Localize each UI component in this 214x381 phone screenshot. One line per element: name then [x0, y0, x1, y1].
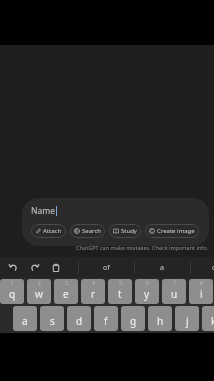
staticText: Search — [82, 227, 101, 235]
button[interactable]: a — [134, 257, 190, 278]
staticText: a — [160, 263, 164, 273]
button[interactable]: a — [13, 306, 37, 331]
button[interactable]: 5 — [108, 279, 132, 304]
staticText: u — [171, 287, 178, 301]
button[interactable]: 1 — [0, 279, 24, 304]
staticText: 4 — [92, 280, 95, 287]
staticText: s — [50, 314, 55, 328]
staticText: t — [118, 287, 122, 301]
button[interactable]: d — [67, 306, 91, 331]
button[interactable]: Name — [22, 198, 209, 246]
staticText: i — [200, 287, 203, 301]
button[interactable]: 7 — [162, 279, 186, 304]
staticText: w — [35, 287, 43, 301]
staticText: 2 — [38, 280, 41, 287]
button[interactable]: h — [148, 306, 172, 331]
button[interactable]: j — [175, 306, 199, 331]
button[interactable]: 6 — [135, 279, 159, 304]
button[interactable]: Create image — [145, 224, 199, 238]
staticText: Attach — [43, 227, 62, 235]
staticText: y — [144, 287, 150, 301]
staticText: 6 — [146, 280, 149, 287]
staticText: ChatGPT can make mistakes. Check importa… — [76, 244, 208, 251]
staticText: Create image — [157, 227, 195, 235]
staticText: 8 — [200, 280, 203, 287]
staticText: k — [211, 314, 214, 328]
staticText: r — [91, 287, 96, 301]
button[interactable]: 4 — [81, 279, 105, 304]
button[interactable]: g — [121, 306, 145, 331]
staticText: 3 — [65, 280, 68, 287]
button[interactable]: Clipboard — [49, 261, 62, 274]
button[interactable]: 3 — [54, 279, 78, 304]
staticText: Name — [31, 205, 55, 217]
button[interactable]: Attach — [31, 224, 66, 238]
button[interactable]: Study — [109, 224, 141, 238]
button[interactable]: one — [190, 257, 214, 278]
staticText: g — [130, 314, 137, 328]
staticText: h — [157, 314, 164, 328]
staticText: Study — [121, 227, 137, 235]
button[interactable]: Redo — [28, 261, 41, 274]
staticText: of — [103, 263, 110, 273]
button[interactable]: s — [40, 306, 64, 331]
button[interactable]: 8 — [189, 279, 213, 304]
button[interactable]: Search — [70, 224, 105, 238]
staticText: e — [63, 287, 69, 301]
staticText: 1 — [11, 280, 14, 287]
button[interactable]: Undo — [7, 261, 20, 274]
staticText: 5 — [119, 280, 122, 287]
staticText: q — [9, 287, 16, 301]
staticText: 7 — [173, 280, 176, 287]
button[interactable]: f — [94, 306, 118, 331]
staticText: j — [186, 314, 189, 328]
staticText: f — [104, 314, 108, 328]
button[interactable]: of — [78, 257, 134, 278]
button[interactable]: k — [202, 306, 214, 331]
staticText: one — [212, 263, 214, 273]
staticText: d — [76, 314, 83, 328]
staticText: a — [22, 314, 28, 328]
button[interactable]: 2 — [27, 279, 51, 304]
